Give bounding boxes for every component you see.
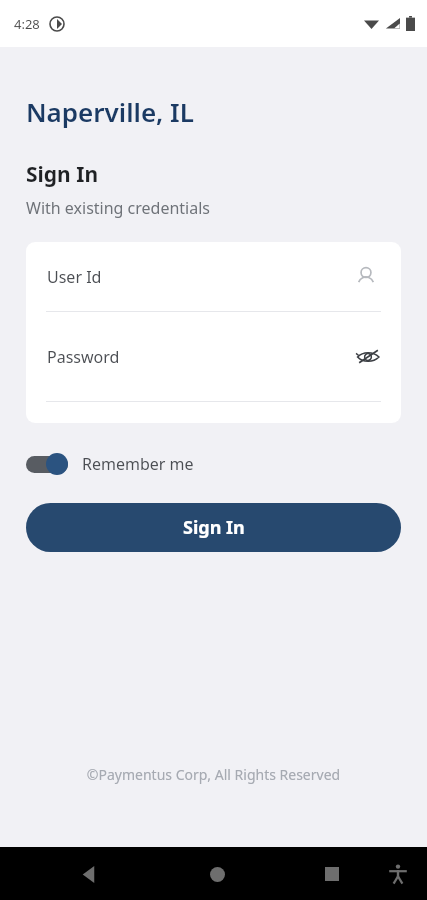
staticText: With existing credentials [26, 197, 211, 219]
button[interactable]: Recent apps [315, 857, 349, 891]
other: User account [353, 264, 379, 290]
staticText: Password [47, 346, 120, 368]
staticText: 4:28 [14, 15, 40, 33]
button[interactable]: Password [26, 312, 401, 401]
button[interactable]: Remember me [26, 451, 204, 477]
staticText: ©Paymentus Corp, All Rights Reserved [0, 765, 427, 784]
staticText: Sign In [183, 515, 245, 540]
button[interactable]: User Id [26, 242, 401, 311]
button[interactable]: Back [72, 857, 106, 891]
staticText: Remember me [82, 453, 194, 475]
button[interactable]: Accessibility [381, 857, 415, 891]
staticText: User Id [47, 266, 102, 288]
staticText: Naperville, IL [26, 94, 194, 129]
staticText: Sign In [26, 160, 99, 189]
button[interactable]: Show password [355, 344, 381, 370]
button[interactable]: Home [200, 857, 234, 891]
button[interactable]: Sign In [26, 503, 401, 552]
